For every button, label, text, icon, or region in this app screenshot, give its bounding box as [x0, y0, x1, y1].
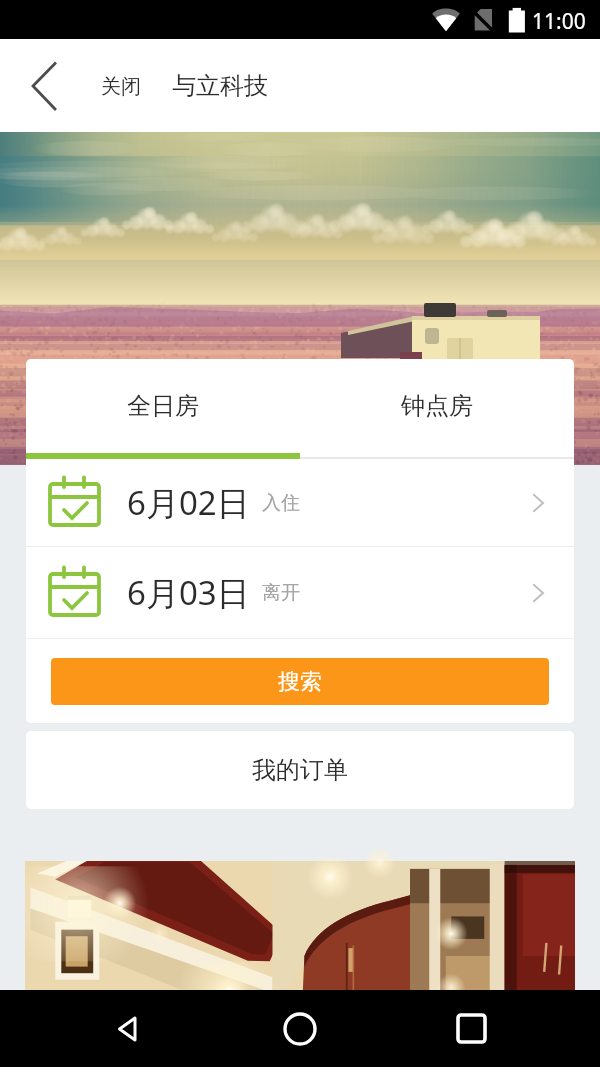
- button[interactable]: Back: [0, 39, 78, 132]
- button[interactable]: 全日房: [26, 359, 300, 453]
- staticText: 全日房: [127, 391, 199, 421]
- button[interactable]: 钟点房: [300, 359, 574, 453]
- staticText: 我的订单: [252, 755, 348, 785]
- staticText: 钟点房: [401, 391, 473, 421]
- staticText: 离开: [262, 581, 300, 605]
- button[interactable]: 6月02日: [26, 459, 574, 546]
- staticText: 与立科技: [172, 71, 268, 101]
- button[interactable]: 6月03日: [26, 547, 574, 638]
- button[interactable]: 关闭: [101, 74, 141, 99]
- button[interactable]: 我的订单: [26, 731, 574, 809]
- button[interactable]: Recent apps: [429, 990, 513, 1067]
- staticText: 11:00: [532, 7, 586, 36]
- staticText: 6月02日: [127, 480, 250, 525]
- staticText: 入住: [262, 491, 300, 515]
- button[interactable]: 搜索: [51, 658, 549, 705]
- staticText: 6月03日: [127, 570, 250, 615]
- staticText: 搜索: [278, 668, 322, 696]
- button[interactable]: Back: [87, 990, 171, 1067]
- button[interactable]: Home: [258, 990, 342, 1067]
